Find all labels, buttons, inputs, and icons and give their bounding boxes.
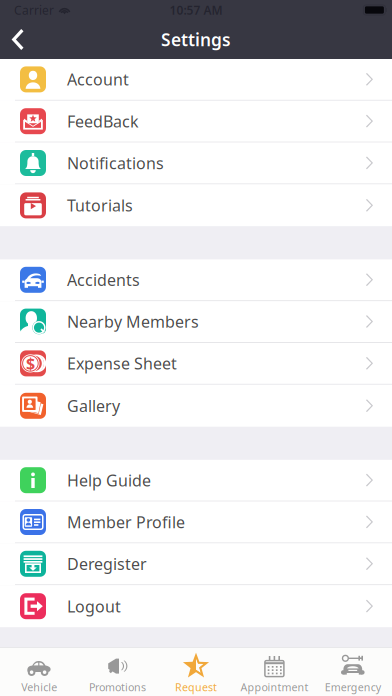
- staticText: 10:57 AM: [169, 2, 222, 18]
- button[interactable]: Account: [0, 59, 392, 101]
- button[interactable]: Deregister: [0, 543, 392, 585]
- button[interactable]: Notifications: [0, 143, 392, 184]
- button[interactable]: Gallery: [0, 385, 392, 427]
- button[interactable]: Promotions: [78, 648, 157, 696]
- button[interactable]: Member Profile: [0, 502, 392, 543]
- staticText: Nearby Members: [67, 311, 199, 332]
- staticText: Account: [67, 69, 129, 90]
- button[interactable]: Help Guide: [0, 460, 392, 502]
- staticText: Request: [175, 680, 217, 694]
- staticText: Notifications: [67, 152, 164, 174]
- staticText: Settings: [161, 28, 231, 51]
- button[interactable]: $: [0, 343, 392, 385]
- staticText: Accidents: [67, 269, 140, 290]
- staticText: Promotions: [89, 680, 146, 694]
- staticText: Help Guide: [67, 470, 151, 491]
- button[interactable]: Request: [157, 648, 235, 696]
- staticText: Emergency: [325, 680, 381, 694]
- staticText: Vehicle: [21, 680, 57, 694]
- button[interactable]: Vehicle: [0, 648, 78, 696]
- button[interactable]: Appointment: [235, 648, 314, 696]
- staticText: Gallery: [67, 395, 120, 416]
- button[interactable]: FeedBack: [0, 101, 392, 143]
- staticText: Member Profile: [67, 511, 185, 533]
- staticText: Deregister: [67, 553, 147, 574]
- staticText: Carrier: [14, 2, 54, 18]
- button[interactable]: Accidents: [0, 259, 392, 301]
- button[interactable]: Back: [0, 20, 39, 59]
- button[interactable]: Tutorials: [0, 184, 392, 226]
- staticText: $: [26, 353, 35, 374]
- staticText: Tutorials: [67, 195, 133, 216]
- staticText: Expense Sheet: [67, 353, 177, 374]
- staticText: Appointment: [240, 680, 308, 694]
- button[interactable]: Nearby Members: [0, 301, 392, 343]
- button[interactable]: Emergency: [314, 648, 392, 696]
- staticText: FeedBack: [67, 111, 139, 132]
- button[interactable]: Logout: [0, 585, 392, 627]
- staticText: Logout: [67, 596, 121, 617]
